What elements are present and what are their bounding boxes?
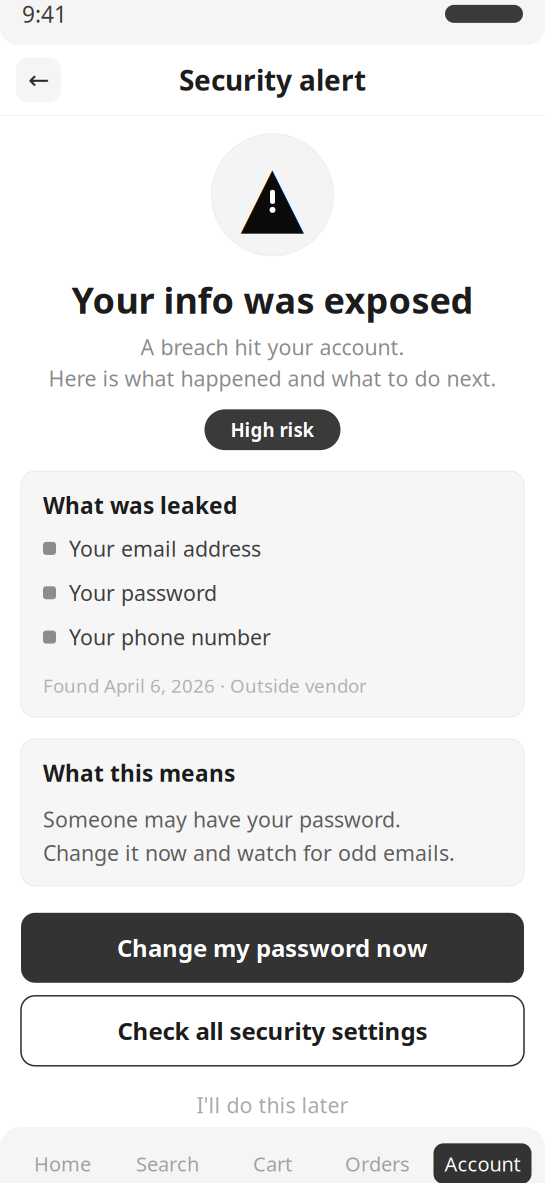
staticText: Change my password now [117, 932, 428, 964]
button[interactable]: Home [10, 1127, 115, 1183]
staticText: Change it now and watch for odd emails. [43, 838, 455, 867]
staticText: What this means [43, 758, 235, 788]
staticText: Here is what happened and what to do nex… [48, 364, 496, 392]
staticText: 9:41 [22, 0, 67, 29]
button[interactable]: Change my password now [21, 913, 524, 983]
staticText: ← [28, 65, 49, 94]
button[interactable]: I'll do this later [176, 1083, 368, 1127]
staticText: A breach hit your account. [140, 333, 404, 361]
staticText: High risk [230, 417, 314, 442]
button[interactable]: Account [430, 1143, 535, 1183]
staticText: ▲ [240, 148, 304, 242]
staticText: Your password [69, 579, 217, 607]
staticText: Check all security settings [117, 1015, 427, 1047]
button[interactable]: Check all security settings [21, 996, 524, 1066]
staticText: What was leaked [43, 490, 237, 520]
staticText: Your phone number [69, 623, 271, 651]
staticText: Account [444, 1150, 520, 1177]
staticText: Home [34, 1150, 91, 1177]
staticText: I'll do this later [196, 1091, 348, 1119]
staticText: Search [136, 1150, 199, 1177]
staticText: Your info was exposed [71, 276, 473, 324]
button[interactable]: Orders [325, 1127, 430, 1183]
staticText: Security alert [179, 61, 366, 98]
staticText: Someone may have your password. [43, 805, 401, 833]
staticText: Found April 6, 2026 · Outside vendor [43, 673, 367, 698]
staticText: Cart [253, 1150, 292, 1177]
button[interactable]: Search [115, 1127, 220, 1183]
button[interactable]: Cart [220, 1127, 325, 1183]
staticText: Your email address [69, 534, 261, 562]
button[interactable]: Back [16, 57, 61, 102]
staticText: Orders [345, 1150, 410, 1177]
